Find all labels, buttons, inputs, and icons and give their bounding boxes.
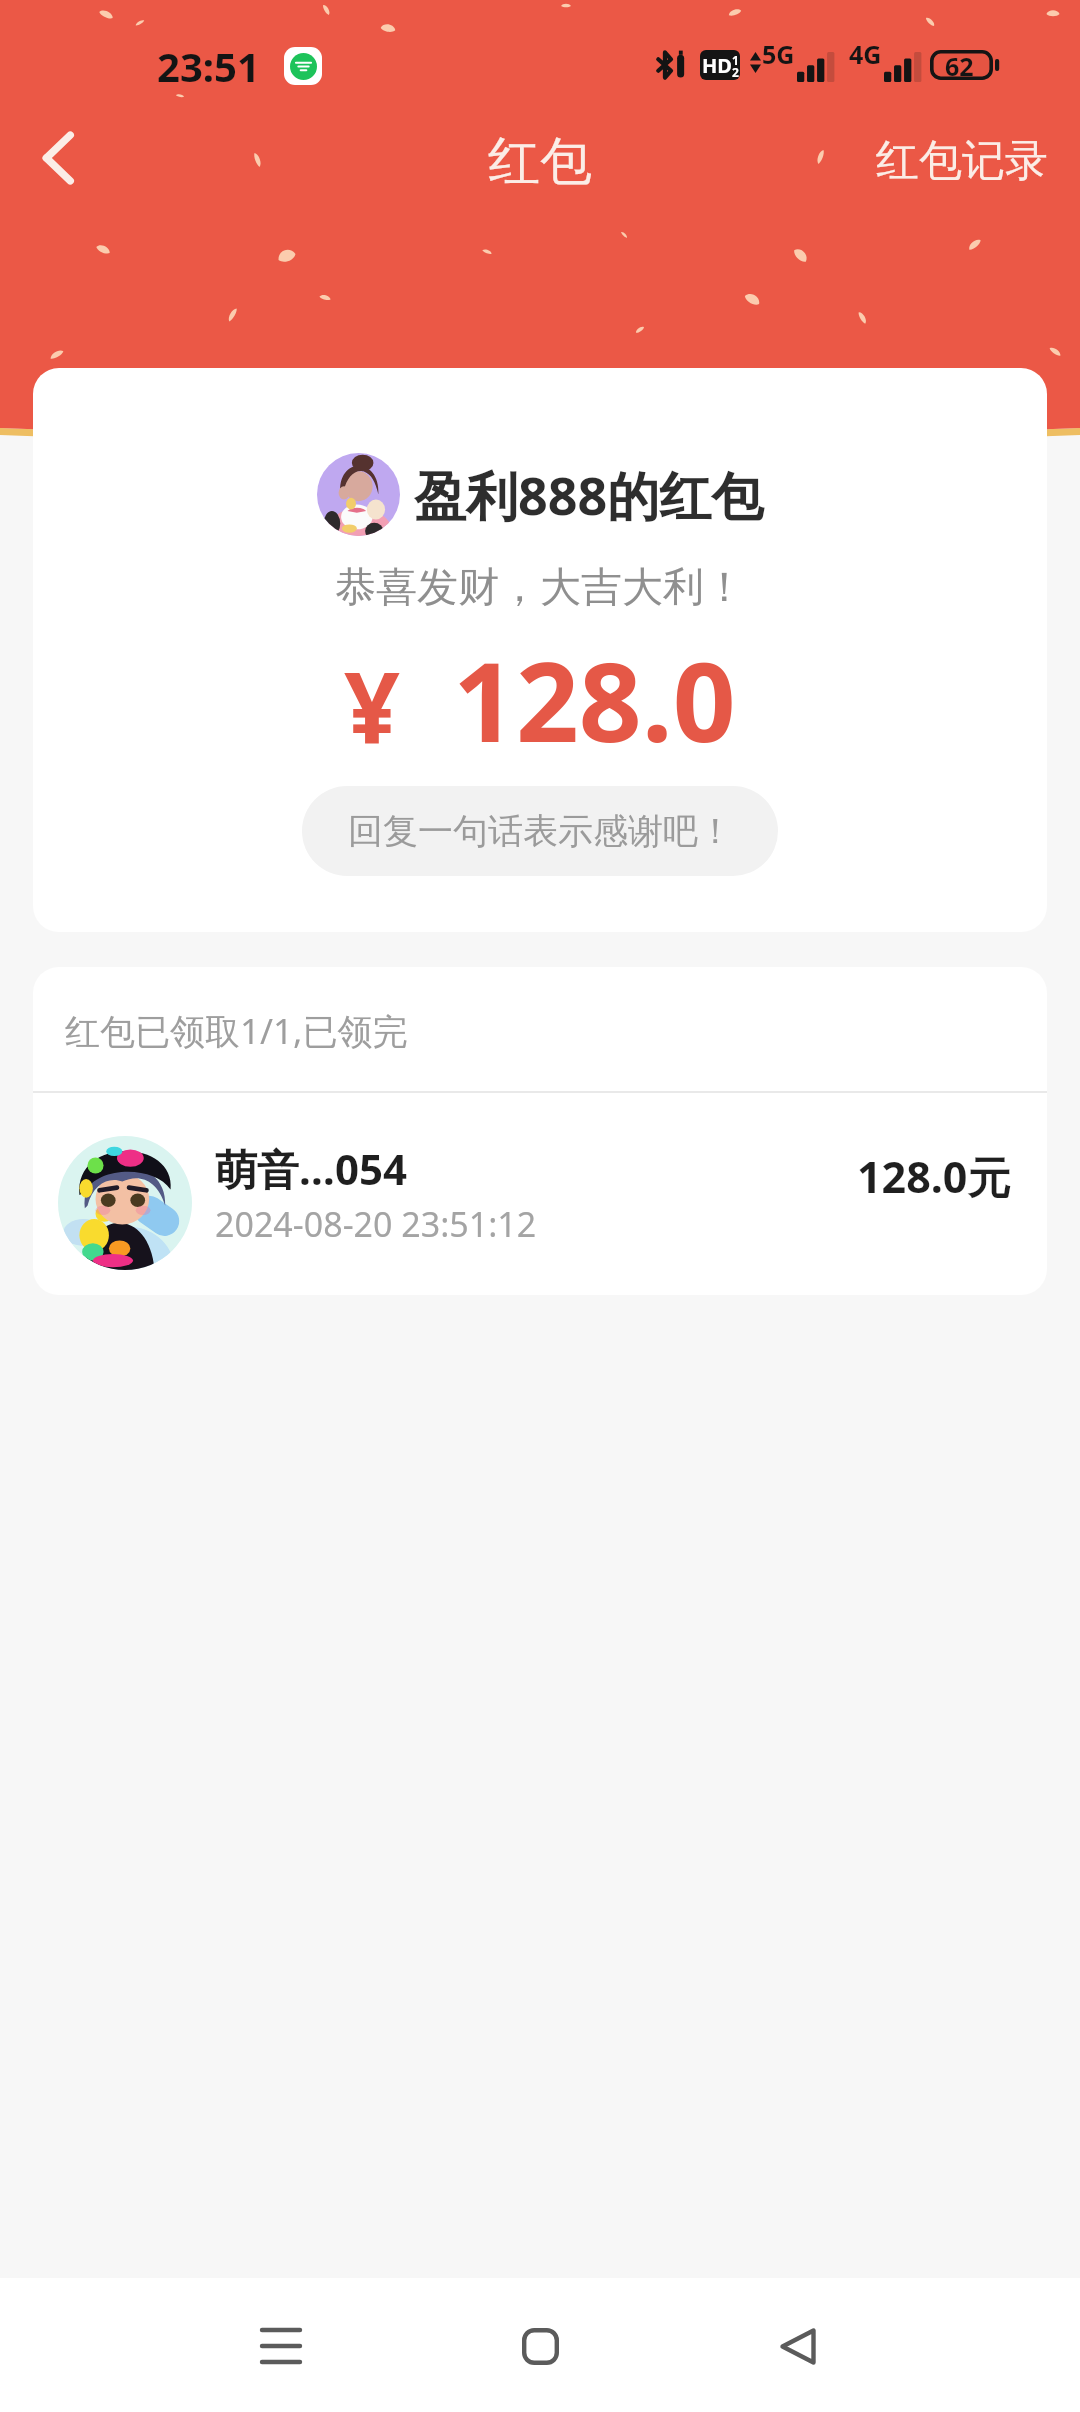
button[interactable]: 红包记录	[860, 126, 1064, 196]
staticText: 红包记录	[876, 134, 1048, 188]
staticText: 128.0元	[857, 1147, 1011, 1206]
staticText: 回复一句话表示感谢吧！	[348, 809, 733, 853]
staticText: 5G	[762, 37, 795, 71]
staticText: 恭喜发财，大吉大利！	[335, 562, 745, 614]
staticText: 2	[732, 64, 739, 78]
staticText: 红包已领取1/1,已领完	[65, 1007, 408, 1055]
staticText: 盈利888的红包	[414, 459, 764, 530]
staticText: 2024-08-20 23:51:12	[215, 1201, 537, 1247]
staticText: 红包	[488, 129, 592, 195]
staticText: HD	[702, 52, 732, 79]
button[interactable]: Back	[22, 122, 94, 194]
staticText: 萌音…054	[215, 1140, 407, 1197]
button[interactable]: Recent apps	[221, 2286, 341, 2406]
staticText: 128.0	[453, 624, 736, 774]
button[interactable]: Back	[738, 2286, 858, 2406]
staticText: 62	[945, 49, 974, 79]
staticText: 23:51	[157, 39, 260, 93]
button[interactable]: Home	[480, 2286, 600, 2406]
staticText: ¥	[344, 639, 401, 772]
button[interactable]: 萌音…054	[33, 1093, 1047, 1295]
button[interactable]: 回复一句话表示感谢吧！	[302, 786, 778, 876]
staticText: 4G	[849, 37, 882, 71]
staticText: 1	[732, 52, 739, 68]
